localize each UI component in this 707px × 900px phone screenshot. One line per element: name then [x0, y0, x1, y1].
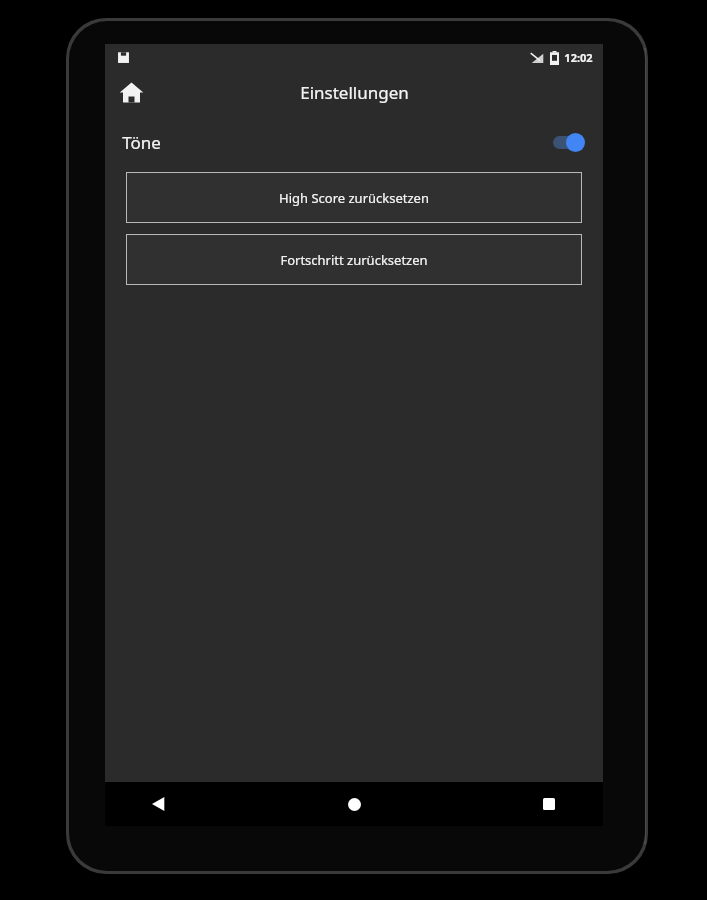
button[interactable]: Back — [135, 782, 183, 826]
button[interactable]: Töne — [105, 122, 603, 162]
staticText: Einstellungen — [300, 81, 409, 104]
staticText: 12:02 — [564, 50, 593, 65]
staticText: Fortschritt zurücksetzen — [280, 251, 428, 269]
staticText: High Score zurücksetzen — [279, 189, 429, 207]
button[interactable]: Home — [330, 782, 378, 826]
button[interactable]: Fortschritt zurücksetzen — [126, 234, 582, 285]
button[interactable]: Home — [111, 72, 151, 112]
staticText: Töne — [122, 131, 161, 154]
button[interactable]: High Score zurücksetzen — [126, 172, 582, 223]
button[interactable]: Recent apps — [525, 782, 573, 826]
